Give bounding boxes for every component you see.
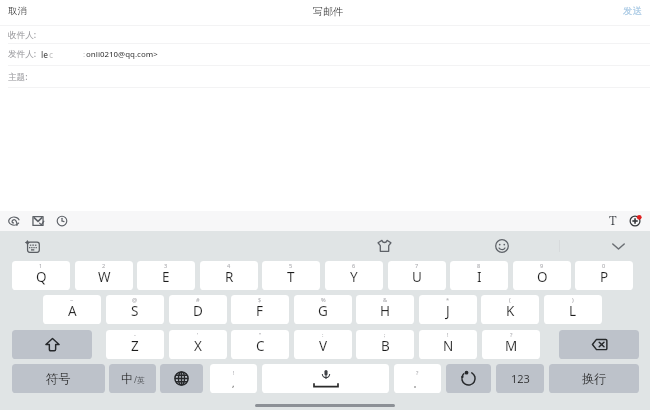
button[interactable]: )	[544, 295, 602, 324]
staticText: !	[447, 331, 449, 339]
staticText: 换行	[582, 371, 607, 386]
button[interactable]: :	[294, 330, 352, 359]
button[interactable]: %	[294, 295, 352, 324]
staticText: *	[446, 296, 450, 304]
button[interactable]: Emoji	[491, 235, 513, 257]
staticText: 0	[602, 262, 606, 270]
button[interactable]: ;	[356, 330, 414, 359]
button[interactable]: 3	[137, 261, 195, 290]
button[interactable]: Schedule	[53, 211, 650, 231]
button[interactable]: 发件人:	[0, 43, 650, 65]
button[interactable]: 收件人:	[6, 27, 39, 43]
staticText: 收件人:	[8, 29, 37, 41]
staticText: G	[318, 302, 328, 320]
button[interactable]: #	[169, 295, 227, 324]
button[interactable]: ~	[43, 295, 101, 324]
button[interactable]: Space	[262, 364, 389, 393]
button[interactable]: 5	[262, 261, 320, 290]
button[interactable]: *	[419, 295, 477, 324]
staticText: S	[131, 302, 139, 320]
staticText: 发送	[623, 5, 642, 17]
button[interactable]: AI assistant	[21, 236, 44, 257]
staticText: C	[256, 337, 265, 355]
staticText: c	[49, 49, 54, 60]
staticText: $	[258, 296, 262, 304]
staticText: J	[446, 302, 450, 320]
staticText: H	[380, 302, 391, 320]
button[interactable]: '	[169, 330, 227, 359]
staticText: Q	[36, 268, 47, 286]
button[interactable]: 7	[388, 261, 446, 290]
staticText: @	[132, 296, 138, 304]
staticText: 发件人:	[8, 48, 37, 60]
button[interactable]: Theme	[373, 235, 396, 257]
button[interactable]: 主题:	[6, 69, 30, 85]
button[interactable]: 发送	[611, 0, 650, 20]
staticText: 7	[415, 262, 419, 270]
button[interactable]: 4	[200, 261, 258, 290]
button[interactable]: 8	[450, 261, 508, 290]
button[interactable]: &	[356, 295, 414, 324]
staticText: 。	[413, 378, 423, 390]
staticText: "	[259, 331, 262, 339]
staticText: ?	[416, 369, 419, 376]
button[interactable]: Undo	[446, 364, 491, 393]
staticText: V	[319, 337, 328, 355]
button[interactable]: !	[419, 330, 477, 359]
button[interactable]: 123	[496, 364, 544, 393]
button[interactable]: 取消	[0, 0, 39, 20]
staticText: #	[196, 296, 200, 304]
staticText: 8	[477, 262, 481, 270]
staticText: /	[134, 374, 137, 385]
button[interactable]: Attach	[5, 211, 650, 231]
button[interactable]: 符号	[12, 364, 105, 393]
staticText: D	[193, 302, 203, 320]
staticText: N	[443, 337, 454, 355]
button[interactable]: !	[210, 364, 257, 393]
staticText: 主题:	[8, 71, 28, 83]
button[interactable]: (	[481, 295, 539, 324]
button[interactable]: 9	[513, 261, 571, 290]
staticText: R	[225, 268, 234, 286]
button[interactable]: Shift	[12, 330, 92, 359]
staticText: 中	[121, 371, 134, 386]
button[interactable]: 0	[575, 261, 633, 290]
button[interactable]: Hide keyboard	[608, 238, 629, 255]
staticText: ~	[70, 296, 74, 304]
button[interactable]: 2	[75, 261, 133, 290]
button[interactable]: @	[106, 295, 164, 324]
button[interactable]: "	[231, 330, 289, 359]
button[interactable]: 1	[12, 261, 70, 290]
staticText: !	[233, 369, 235, 376]
staticText: '	[197, 331, 199, 339]
staticText: 6	[352, 262, 356, 270]
button[interactable]: Mail	[29, 211, 650, 231]
staticText: onli0210@qq.com>	[86, 49, 158, 60]
button[interactable]: $	[231, 295, 289, 324]
button[interactable]: -	[106, 330, 164, 359]
button[interactable]: ?	[482, 330, 540, 359]
staticText: )	[572, 296, 574, 304]
staticText: :	[322, 331, 324, 339]
staticText: 9	[540, 262, 544, 270]
staticText: M	[505, 337, 518, 355]
button[interactable]: 换行	[549, 364, 639, 393]
button[interactable]: 6	[325, 261, 383, 290]
staticText: le	[41, 49, 49, 60]
button[interactable]: Format text	[605, 211, 621, 227]
button[interactable]: Add	[627, 211, 650, 231]
button[interactable]: ?	[394, 364, 441, 393]
button[interactable]: Backspace	[559, 330, 639, 359]
staticText: 1	[39, 262, 43, 270]
button[interactable]: Switch language	[160, 364, 203, 393]
staticText: 2	[102, 262, 106, 270]
staticText: A	[68, 302, 77, 320]
staticText: &	[383, 296, 388, 304]
staticText: 英	[137, 375, 145, 385]
button[interactable]: 中	[109, 364, 156, 393]
staticText: L	[569, 302, 577, 320]
staticText: 写邮件	[313, 5, 344, 18]
staticText: (	[509, 296, 511, 304]
staticText: 5	[289, 262, 293, 270]
staticText: K	[506, 302, 515, 320]
